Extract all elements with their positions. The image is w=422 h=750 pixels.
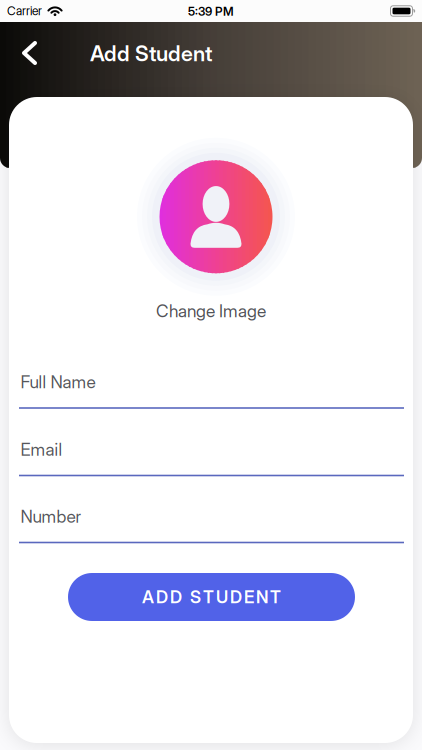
staticText: Full Name [20, 372, 95, 392]
button[interactable]: Change Image [132, 138, 290, 321]
staticText: 5:39 PM [188, 4, 234, 19]
staticText: ADD STUDENT [142, 587, 281, 607]
staticText: Add Student [90, 41, 212, 66]
button[interactable]: Number [18, 503, 404, 549]
button[interactable]: Back [10, 39, 54, 67]
staticText: Number [20, 506, 81, 527]
staticText: Email [20, 439, 62, 460]
button[interactable]: Email [18, 436, 404, 482]
button[interactable]: Full Name [18, 369, 404, 415]
staticText: Carrier [7, 4, 42, 18]
staticText: Change Image [156, 301, 266, 321]
button[interactable]: ADD STUDENT [68, 573, 355, 621]
